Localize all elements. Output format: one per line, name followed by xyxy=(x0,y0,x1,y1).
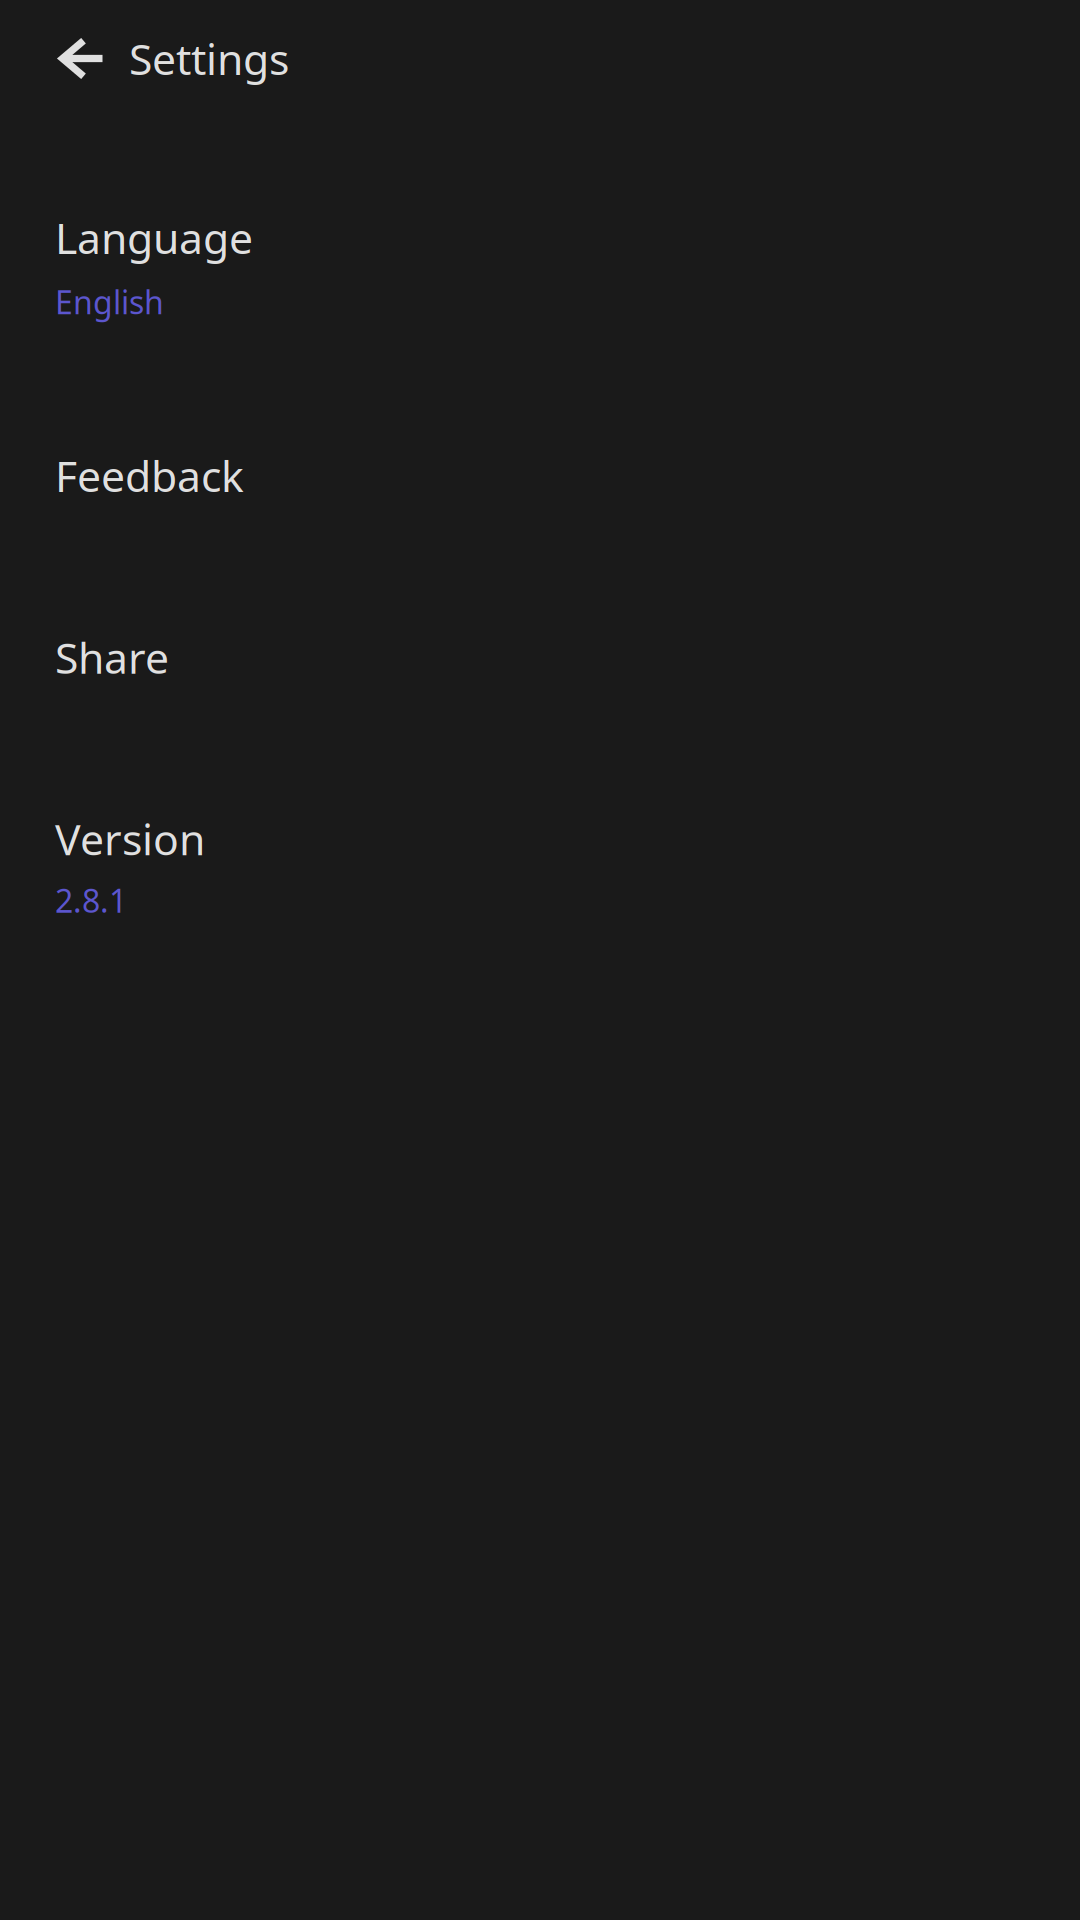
staticText: Feedback xyxy=(55,447,244,504)
staticText: 2.8.1 xyxy=(55,879,127,922)
staticText: English xyxy=(55,281,164,323)
button[interactable]: Share xyxy=(0,573,1080,741)
staticText: Settings xyxy=(129,30,289,87)
button[interactable]: Version xyxy=(0,754,1080,978)
button[interactable]: Feedback xyxy=(0,391,1080,560)
staticText: Version xyxy=(55,810,205,867)
button[interactable]: Language xyxy=(0,153,1080,379)
button[interactable]: Back xyxy=(0,14,129,103)
staticText: Share xyxy=(55,629,169,685)
staticText: Language xyxy=(55,209,253,266)
